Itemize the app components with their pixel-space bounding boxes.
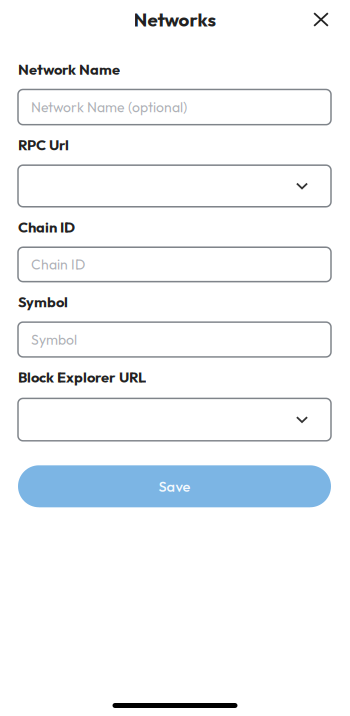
staticText: Chain ID <box>31 256 85 273</box>
button[interactable]: Save <box>18 465 331 507</box>
button[interactable]: Close <box>304 2 338 36</box>
staticText: Block Explorer URL <box>18 368 146 386</box>
staticText: RPC Url <box>18 136 69 154</box>
staticText: Networks <box>133 8 216 31</box>
staticText: Network Name (optional) <box>31 98 187 116</box>
staticText: Chain ID <box>18 218 75 236</box>
staticText: Symbol <box>18 293 68 311</box>
staticText: Symbol <box>31 331 77 348</box>
staticText: Network Name <box>18 60 120 78</box>
staticText: Save <box>158 477 190 496</box>
